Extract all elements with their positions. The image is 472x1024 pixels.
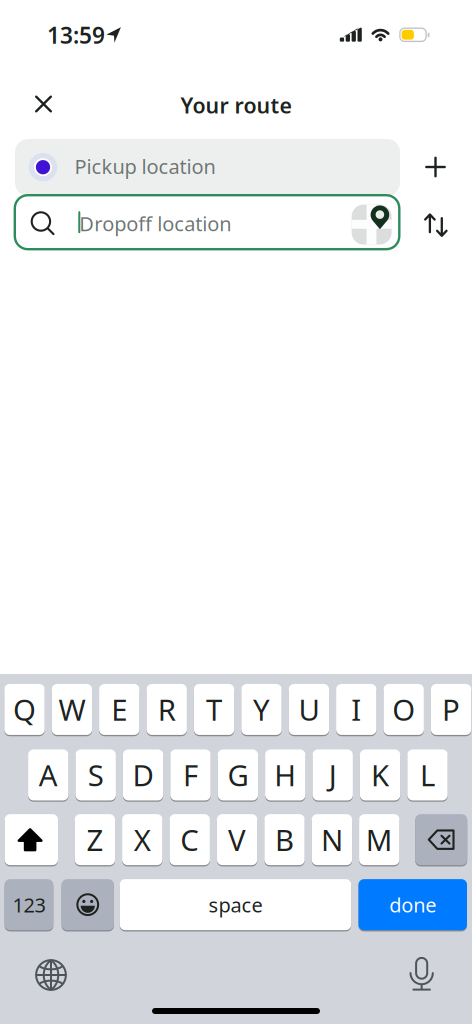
button[interactable]: done (358, 878, 467, 931)
staticText: T (206, 690, 222, 729)
button[interactable]: H (265, 749, 305, 801)
staticText: N (321, 820, 343, 859)
staticText: L (420, 755, 435, 794)
staticText: I (351, 690, 361, 729)
staticText: 13:59 (47, 20, 105, 50)
button[interactable]: T (194, 683, 234, 736)
button[interactable]: O (383, 683, 424, 736)
staticText: O (392, 690, 415, 729)
staticText: A (39, 755, 58, 794)
button[interactable]: 123 (5, 878, 53, 931)
staticText: P (442, 690, 460, 729)
button[interactable]: M (359, 813, 399, 866)
button[interactable]: Add stop (407, 139, 463, 195)
button[interactable]: F (170, 749, 211, 801)
staticText: F (183, 755, 198, 794)
button[interactable]: D (123, 749, 163, 801)
button[interactable]: Change keyboard (23, 950, 79, 1000)
button[interactable]: Dropoff location (15, 195, 399, 249)
staticText: space (208, 891, 262, 918)
button[interactable]: Close (21, 82, 65, 126)
button[interactable]: E (99, 683, 139, 736)
button[interactable]: C (169, 813, 210, 866)
staticText: Q (13, 690, 36, 729)
button[interactable]: G (218, 749, 258, 801)
staticText: S (88, 755, 104, 794)
staticText: G (227, 755, 248, 794)
staticText: Your route (180, 91, 291, 119)
button[interactable]: I (336, 683, 376, 736)
staticText: R (158, 690, 176, 729)
button[interactable]: Swap pickup and dropoff (408, 197, 464, 253)
button[interactable]: B (264, 813, 305, 866)
button[interactable]: J (312, 749, 353, 801)
staticText: Z (86, 820, 103, 859)
staticText: Dropoff location (79, 210, 231, 237)
staticText: X (134, 820, 151, 859)
staticText: D (133, 755, 154, 794)
button[interactable]: Pickup location (15, 139, 400, 196)
button[interactable]: K (360, 749, 400, 801)
button[interactable]: W (52, 683, 92, 736)
staticText: Y (253, 690, 270, 729)
staticText: 123 (12, 891, 45, 918)
staticText: E (111, 690, 127, 729)
staticText: J (329, 755, 337, 794)
button[interactable]: A (28, 749, 68, 801)
staticText: W (58, 690, 85, 729)
button[interactable]: Shift (5, 813, 58, 866)
button[interactable]: Y (241, 683, 282, 736)
button[interactable]: S (75, 749, 116, 801)
button[interactable]: X (122, 813, 162, 866)
button[interactable]: U (289, 683, 329, 736)
button[interactable]: L (407, 749, 448, 801)
button[interactable]: space (120, 878, 351, 931)
button[interactable]: R (146, 683, 187, 736)
staticText: done (389, 891, 436, 918)
button[interactable]: Z (75, 813, 115, 866)
staticText: B (275, 820, 294, 859)
button[interactable]: N (312, 813, 352, 866)
staticText: H (274, 755, 296, 794)
staticText: V (228, 820, 246, 859)
button[interactable]: Dictate (394, 949, 450, 999)
staticText: C (180, 820, 199, 859)
staticText: U (298, 690, 319, 729)
staticText: K (371, 755, 389, 794)
staticText: M (366, 820, 393, 859)
button[interactable]: P (431, 683, 471, 736)
staticText: Pickup location (74, 153, 215, 180)
button[interactable]: V (217, 813, 257, 866)
button[interactable]: Delete (415, 813, 467, 866)
button[interactable]: Q (4, 683, 45, 736)
button[interactable]: Emoji (62, 878, 114, 931)
